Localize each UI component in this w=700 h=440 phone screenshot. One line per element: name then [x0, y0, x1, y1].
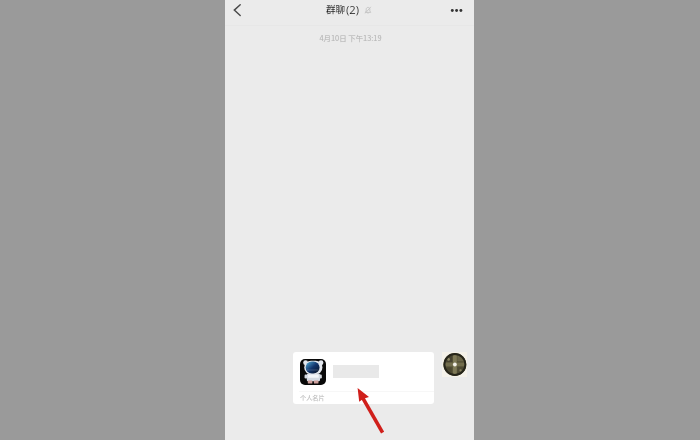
staticText: 群聊	[326, 2, 346, 16]
button[interactable]: Back	[231, 0, 251, 20]
button[interactable]: Sender avatar	[442, 352, 467, 377]
staticText: 4月10日 下午13:19	[226, 32, 475, 43]
staticText: (2)	[346, 2, 360, 17]
button[interactable]: 个人名片	[293, 352, 434, 404]
button[interactable]: More options	[448, 0, 468, 20]
staticText: 个人名片	[300, 393, 325, 402]
